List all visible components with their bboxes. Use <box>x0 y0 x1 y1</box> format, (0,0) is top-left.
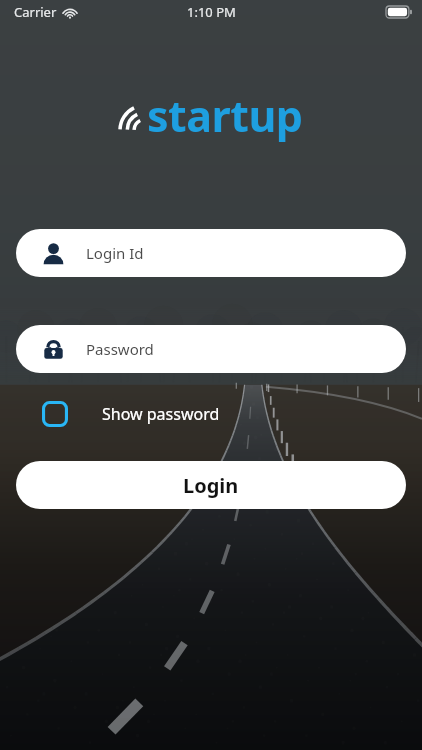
staticText: Login <box>183 472 239 499</box>
staticText: Login Id <box>86 243 144 263</box>
staticText: startup <box>147 86 303 145</box>
staticText: 1:10 PM <box>187 3 236 21</box>
button[interactable]: Login Id <box>16 229 406 277</box>
staticText: Password <box>86 339 154 359</box>
button[interactable]: Show password <box>16 395 224 433</box>
button[interactable]: Password <box>16 325 406 373</box>
staticText: Show password <box>102 403 220 425</box>
staticText: Carrier <box>14 3 57 21</box>
button[interactable]: Login <box>16 461 406 509</box>
